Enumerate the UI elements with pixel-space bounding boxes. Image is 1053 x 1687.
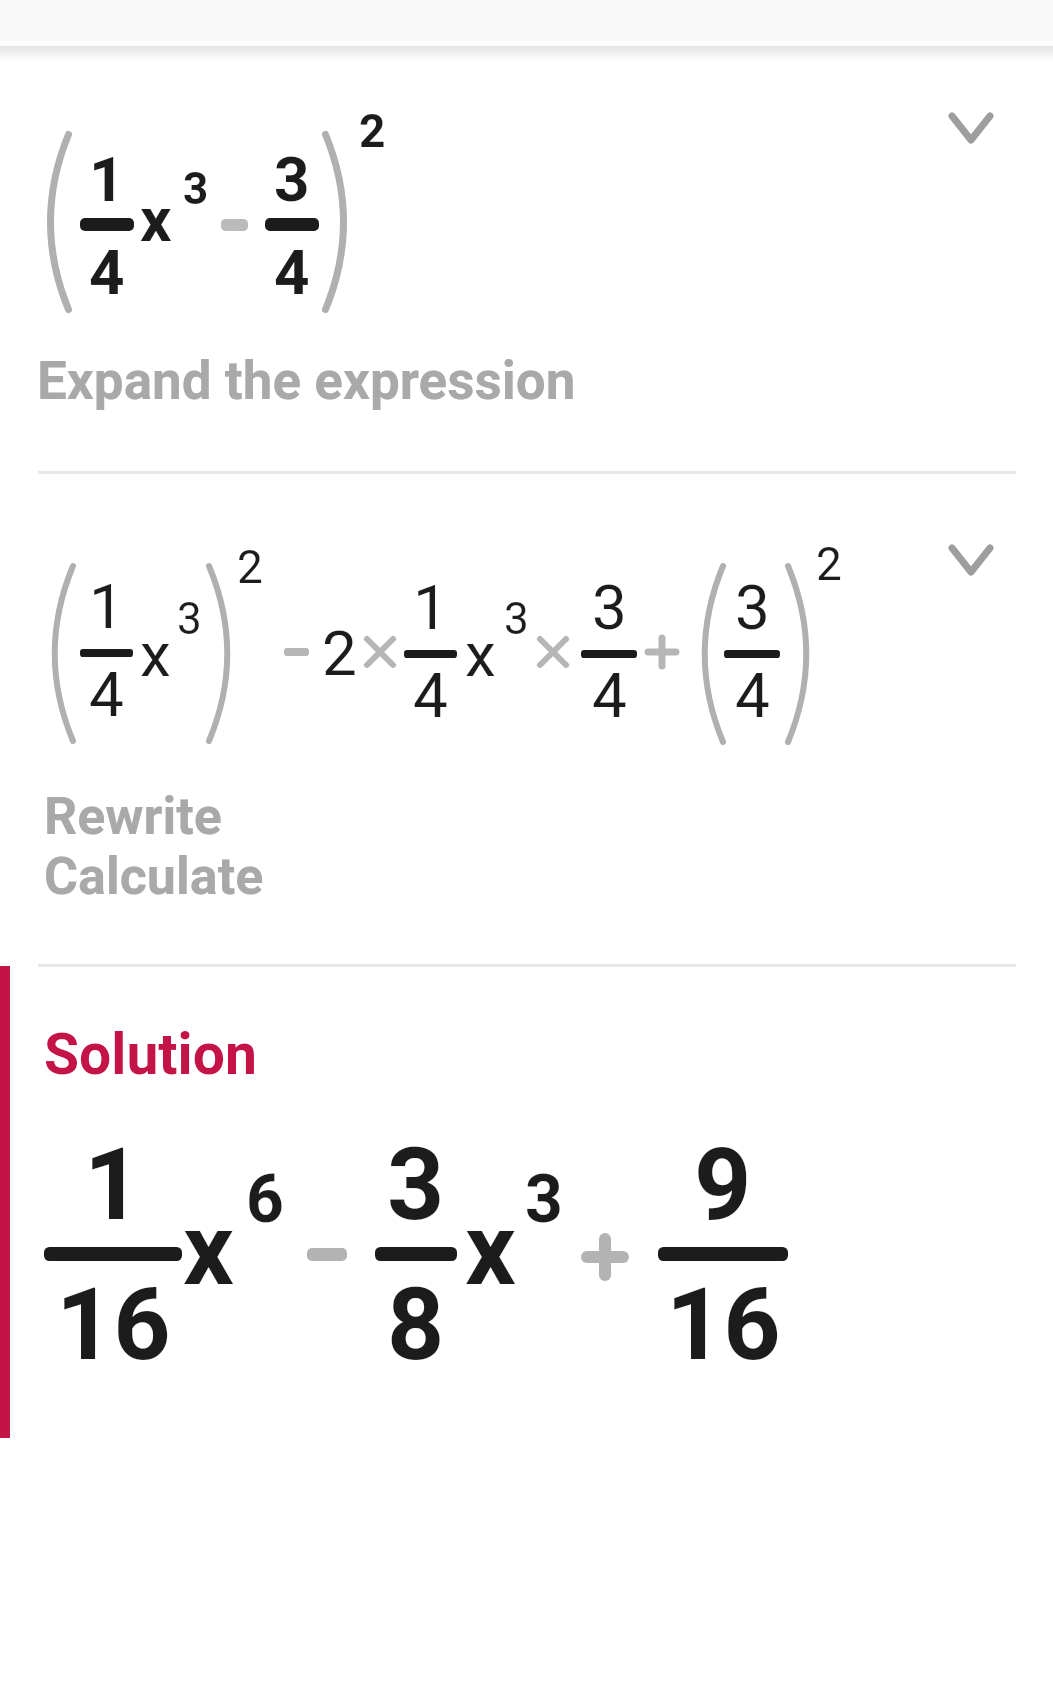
staticText: x xyxy=(140,183,172,256)
staticText: 4 xyxy=(592,659,627,732)
staticText: 4 xyxy=(89,658,124,731)
staticText: 3 xyxy=(525,1161,563,1238)
staticText: x xyxy=(183,1191,234,1308)
button[interactable] xyxy=(0,474,1053,964)
staticText: 1 xyxy=(89,143,125,216)
staticText: x xyxy=(465,618,496,691)
staticText: x xyxy=(465,1191,516,1308)
staticText: 3 xyxy=(274,143,310,216)
staticText: 3 xyxy=(387,1126,445,1243)
staticText: Calculate xyxy=(44,846,264,907)
staticText: 2 xyxy=(237,540,263,594)
staticText: Rewrite xyxy=(44,786,222,847)
staticText: Solution xyxy=(44,1021,257,1088)
staticText: 16 xyxy=(666,1266,781,1383)
staticText: 1 xyxy=(413,571,448,644)
button[interactable] xyxy=(948,544,994,576)
staticText: 2 xyxy=(816,537,842,591)
staticText: 6 xyxy=(246,1161,284,1238)
button[interactable] xyxy=(948,112,994,144)
staticText: 9 xyxy=(694,1126,752,1243)
staticText: 4 xyxy=(413,659,448,732)
staticText: 4 xyxy=(735,659,770,732)
staticText: 2 xyxy=(359,104,386,158)
staticText: 2 xyxy=(322,617,357,690)
staticText: 3 xyxy=(183,163,209,215)
staticText: 4 xyxy=(274,236,310,309)
staticText: 3 xyxy=(735,571,770,644)
staticText: Expand the expression xyxy=(37,350,576,412)
staticText: x xyxy=(140,618,171,691)
staticText: 1 xyxy=(89,570,124,643)
staticText: 3 xyxy=(177,593,202,645)
button[interactable] xyxy=(0,60,1053,472)
staticText: 4 xyxy=(89,236,125,309)
staticText: 16 xyxy=(56,1266,171,1383)
staticText: 1 xyxy=(84,1126,142,1243)
staticText: 8 xyxy=(387,1266,445,1383)
staticText: 3 xyxy=(504,593,529,645)
staticText: 3 xyxy=(592,571,627,644)
